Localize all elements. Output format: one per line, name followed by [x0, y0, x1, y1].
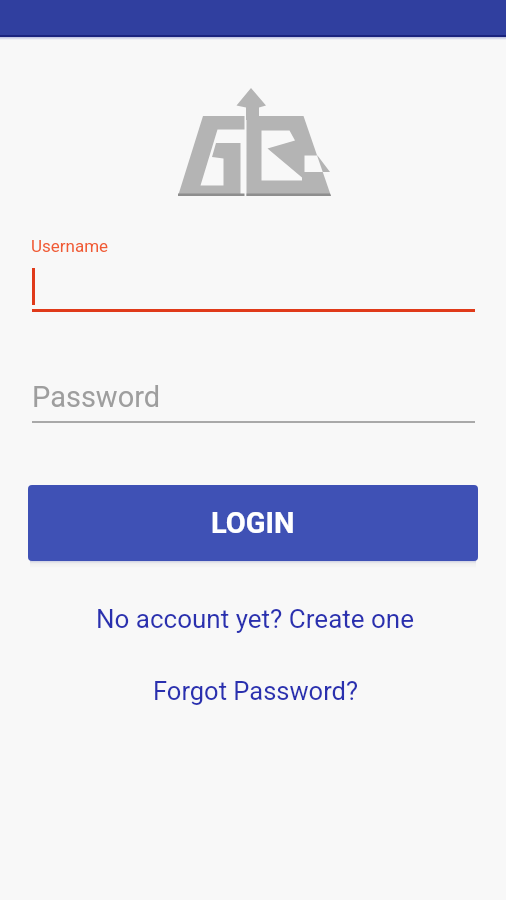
button[interactable]: LOGIN: [28, 485, 478, 561]
button[interactable]: [30, 372, 476, 422]
staticText: LOGIN: [211, 506, 295, 540]
staticText: Password: [32, 380, 161, 414]
button[interactable]: [30, 232, 476, 314]
other: App logo: [168, 82, 348, 202]
staticText: No account yet? Create one: [96, 604, 414, 634]
button[interactable]: No account yet? Create one: [5, 599, 505, 639]
staticText: Username: [31, 236, 109, 256]
staticText: Forgot Password?: [153, 676, 358, 706]
button[interactable]: Forgot Password?: [5, 671, 505, 711]
